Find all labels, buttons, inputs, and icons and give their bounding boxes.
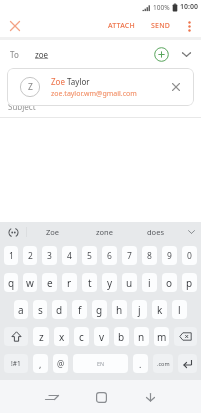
button[interactable]: a	[14, 300, 28, 319]
button[interactable]	[180, 48, 193, 61]
button[interactable]: SEND	[149, 19, 173, 33]
button[interactable]	[0, 222, 26, 242]
button[interactable]: r	[62, 273, 77, 292]
button[interactable]: t	[82, 273, 97, 292]
staticText: Zoe	[46, 227, 60, 237]
button[interactable]: h	[112, 300, 127, 319]
button[interactable]: 9	[162, 246, 177, 265]
button[interactable]: v	[94, 327, 109, 346]
button[interactable]: 6	[102, 246, 117, 265]
staticText: 9	[167, 250, 172, 262]
button[interactable]	[141, 388, 159, 406]
button[interactable]: m	[154, 327, 169, 346]
button[interactable]: 4	[62, 246, 77, 265]
button[interactable]: 8	[142, 246, 157, 265]
staticText: a	[18, 303, 24, 317]
staticText: l	[178, 303, 181, 317]
staticText: ATTACH	[108, 21, 135, 31]
button[interactable]: e	[42, 273, 57, 292]
button[interactable]	[183, 20, 195, 32]
button[interactable]: i	[142, 273, 157, 292]
staticText: 3	[47, 250, 52, 262]
button[interactable]: f	[72, 300, 87, 319]
button[interactable]	[174, 327, 197, 346]
button[interactable]	[6, 17, 24, 35]
button[interactable]: b	[114, 327, 129, 346]
button[interactable]: s	[33, 300, 47, 319]
button[interactable]	[178, 354, 197, 373]
staticText: !#1	[11, 359, 21, 368]
button[interactable]: y	[102, 273, 117, 292]
button[interactable]: q	[4, 273, 18, 292]
button[interactable]: ATTACH	[106, 19, 137, 33]
button[interactable]: j	[132, 300, 147, 319]
button[interactable]: .	[133, 354, 148, 373]
button[interactable]: 3	[42, 246, 57, 265]
button[interactable]: Z	[7, 68, 194, 106]
button[interactable]: p	[182, 273, 197, 292]
button[interactable]: 1	[4, 246, 18, 265]
button[interactable]: ,	[33, 354, 48, 373]
button[interactable]	[166, 77, 186, 97]
staticText: .com	[157, 360, 170, 367]
button[interactable]	[181, 222, 201, 242]
staticText: 7	[127, 250, 132, 262]
staticText: 100%	[153, 3, 170, 12]
button[interactable]: !#1	[4, 354, 28, 373]
button[interactable]: c	[74, 327, 89, 346]
staticText: q	[8, 276, 15, 290]
button[interactable]: g	[92, 300, 107, 319]
button[interactable]: z	[33, 327, 49, 346]
staticText: 0	[187, 250, 192, 262]
staticText: f	[78, 303, 82, 317]
button[interactable]: zone	[79, 222, 130, 242]
staticText: p	[186, 276, 193, 290]
staticText: u	[126, 276, 133, 290]
button[interactable]: Subject	[8, 101, 36, 112]
button[interactable]: x	[54, 327, 69, 346]
button[interactable]: d	[52, 300, 67, 319]
button[interactable]	[4, 327, 28, 346]
staticText: h	[116, 303, 123, 317]
staticText: @	[57, 358, 65, 369]
button[interactable]	[92, 388, 110, 406]
staticText: j	[138, 303, 141, 317]
staticText: SEND	[151, 21, 171, 31]
button[interactable]: 2	[23, 246, 37, 265]
button[interactable]: 7	[122, 246, 137, 265]
button[interactable]: EN	[73, 354, 128, 373]
staticText: EN	[97, 360, 105, 367]
button[interactable]: n	[134, 327, 149, 346]
button[interactable]: k	[152, 300, 167, 319]
button[interactable]: w	[23, 273, 37, 292]
button[interactable]: 5	[82, 246, 97, 265]
staticText: zone	[96, 227, 113, 237]
button[interactable]: .com	[153, 354, 173, 373]
staticText: 1	[9, 250, 14, 262]
button[interactable]: Zoe	[27, 222, 79, 242]
button[interactable]: o	[162, 273, 177, 292]
staticText: e	[47, 276, 53, 290]
button[interactable]: 0	[182, 246, 197, 265]
button[interactable]: u	[122, 273, 137, 292]
staticText: c	[79, 330, 84, 344]
button[interactable]	[154, 47, 169, 62]
button[interactable]: does	[130, 222, 181, 242]
button[interactable]: To	[0, 40, 201, 68]
staticText: z	[39, 330, 44, 344]
staticText: 2	[28, 250, 33, 262]
button[interactable]: @	[53, 354, 68, 373]
button[interactable]	[43, 388, 61, 406]
button[interactable]: l	[172, 300, 187, 319]
staticText: g	[96, 303, 103, 317]
staticText: 5	[87, 250, 92, 262]
staticText: 6	[107, 250, 112, 262]
staticText: i	[148, 276, 151, 290]
staticText: Zoe Taylor	[51, 76, 90, 87]
staticText: 8	[147, 250, 152, 262]
staticText: y	[107, 276, 113, 290]
staticText: t	[88, 276, 92, 290]
staticText: ,	[39, 358, 42, 370]
staticText: b	[118, 330, 125, 344]
staticText: o	[166, 276, 173, 290]
